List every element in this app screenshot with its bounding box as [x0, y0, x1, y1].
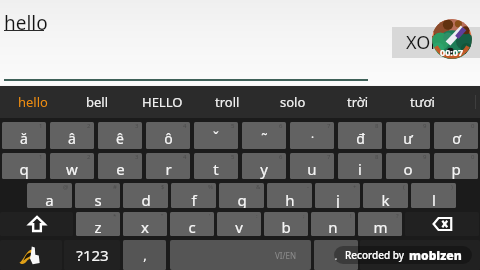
staticText: ! — [350, 212, 352, 220]
staticText: trời — [347, 93, 369, 111]
button[interactable]: Keyboard settings — [0, 240, 62, 270]
staticText: n — [328, 217, 338, 236]
staticText: w — [66, 159, 78, 179]
staticText: XON — [406, 30, 444, 55]
button[interactable]: i — [338, 153, 382, 179]
staticText: mobizen — [409, 247, 462, 263]
staticText: 3 — [135, 153, 139, 161]
button[interactable]: d — [123, 183, 168, 208]
staticText: & — [256, 183, 261, 191]
staticText: x — [141, 217, 149, 236]
button[interactable]: HELLO — [130, 86, 195, 118]
button[interactable]: ?123 — [64, 240, 120, 270]
button[interactable]: bell — [65, 86, 130, 118]
button[interactable]: t — [194, 153, 238, 179]
button[interactable]: v — [217, 212, 261, 236]
button[interactable]: j — [315, 183, 360, 208]
button[interactable]: â — [50, 122, 94, 149]
staticText: b — [281, 217, 291, 236]
button[interactable]: ˙ — [290, 122, 334, 149]
button[interactable]: trời — [325, 86, 390, 118]
staticText: % — [208, 183, 213, 191]
button[interactable]: solo — [260, 86, 325, 118]
staticText: * — [113, 212, 117, 220]
button[interactable]: x — [123, 212, 167, 236]
button[interactable]: f — [171, 183, 216, 208]
button[interactable]: Shift — [0, 212, 73, 236]
staticText: hello — [4, 10, 48, 36]
staticText: 6 — [279, 122, 283, 130]
button[interactable]: a — [27, 183, 72, 208]
staticText: solo — [280, 93, 306, 111]
button[interactable]: Screen recorder — [432, 19, 472, 59]
button[interactable]: s — [75, 183, 120, 208]
button[interactable]: m — [358, 212, 402, 236]
button[interactable]: XON — [392, 27, 480, 58]
button[interactable]: z — [76, 212, 120, 236]
staticText: 3 — [135, 122, 139, 130]
button[interactable]: Space — [170, 240, 311, 270]
staticText: t — [213, 159, 219, 179]
button[interactable]: w — [50, 153, 94, 179]
staticText: ă — [20, 129, 28, 148]
button[interactable]: p — [434, 153, 478, 179]
button[interactable]: tươi — [390, 86, 455, 118]
button[interactable]: ơ — [434, 122, 478, 149]
button[interactable]: g — [219, 183, 264, 208]
button[interactable]: b — [264, 212, 308, 236]
button[interactable]: ô — [146, 122, 190, 149]
staticText: 9 — [423, 122, 427, 130]
button[interactable]: l — [411, 183, 456, 208]
button[interactable]: ê — [98, 122, 142, 149]
staticText: 5 — [231, 153, 235, 161]
staticText: 0 — [471, 153, 475, 161]
button[interactable]: , — [123, 240, 166, 270]
button[interactable]: Backspace — [405, 212, 479, 236]
button[interactable]: troll — [195, 86, 260, 118]
staticText: ơ — [452, 129, 461, 148]
staticText: tươi — [410, 93, 435, 111]
staticText: ê — [116, 129, 124, 148]
staticText: + — [353, 183, 357, 191]
button[interactable]: e — [98, 153, 142, 179]
staticText: 2 — [87, 122, 91, 130]
staticText: HELLO — [142, 93, 183, 111]
staticText: 5 — [231, 122, 235, 130]
button[interactable]: q — [2, 153, 46, 179]
staticText: f — [191, 190, 197, 208]
button[interactable]: ˜ — [242, 122, 286, 149]
button[interactable]: r — [146, 153, 190, 179]
button[interactable]: n — [311, 212, 355, 236]
button[interactable]: hello — [0, 86, 65, 118]
button[interactable]: . — [314, 240, 358, 270]
button[interactable]: y — [242, 153, 286, 179]
staticText: 7 — [327, 153, 331, 161]
button[interactable]: Enter — [360, 240, 480, 270]
button[interactable]: h — [267, 183, 312, 208]
staticText: 4 — [183, 153, 187, 161]
button[interactable]: ă — [2, 122, 46, 149]
button[interactable]: ư — [386, 122, 430, 149]
staticText: ?123 — [76, 245, 109, 265]
button[interactable]: đ — [338, 122, 382, 149]
button[interactable]: ˇ — [194, 122, 238, 149]
button[interactable]: o — [386, 153, 430, 179]
staticText: ˜ — [261, 129, 268, 148]
staticText: 8 — [375, 122, 379, 130]
staticText: e — [116, 159, 125, 179]
button[interactable]: u — [290, 153, 334, 179]
staticText: j — [336, 190, 340, 208]
staticText: # — [113, 183, 117, 191]
button[interactable]: k — [363, 183, 408, 208]
staticText: 1 — [39, 122, 43, 130]
staticText: p — [451, 159, 461, 179]
staticText: z — [94, 217, 102, 236]
button[interactable]: c — [170, 212, 214, 236]
staticText: ư — [403, 129, 413, 148]
staticText: " — [161, 212, 164, 220]
staticText: o — [403, 159, 413, 179]
